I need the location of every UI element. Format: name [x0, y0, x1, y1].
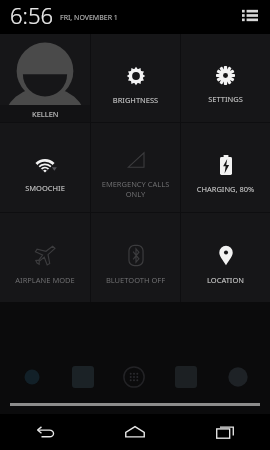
button[interactable]: BLUETOOTH OFF [91, 213, 180, 302]
staticText: LOCATION [183, 275, 268, 285]
button[interactable]: Recent apps [180, 414, 270, 450]
staticText: SETTINGS [183, 94, 268, 104]
button[interactable]: Back [0, 414, 90, 450]
button[interactable]: SMOOCHIE [0, 123, 90, 212]
button[interactable]: CHARGING, 80% [181, 123, 270, 212]
staticText: AIRPLANE MODE [2, 275, 88, 285]
button[interactable]: User Kellen [0, 34, 90, 122]
button[interactable]: AIRPLANE MODE [0, 213, 90, 302]
button[interactable]: Home [90, 414, 180, 450]
button[interactable]: Quick settings list [238, 3, 262, 27]
staticText: 6:56 [10, 0, 54, 30]
staticText: KELLEN [32, 109, 59, 119]
staticText: BLUETOOTH OFF [93, 275, 178, 285]
staticText: SMOOCHIE [2, 183, 88, 193]
button[interactable]: BRIGHTNESS [91, 34, 180, 122]
staticText: BRIGHTNESS [93, 95, 178, 105]
staticText: EMERGENCY CALLS ONLY [93, 179, 178, 199]
staticText: CHARGING, 80% [183, 184, 268, 194]
staticText: FRI, NOVEMBER 1 [60, 13, 118, 23]
button[interactable]: LOCATION [181, 213, 270, 302]
button[interactable]: EMERGENCY CALLS ONLY [91, 123, 180, 212]
button[interactable]: SETTINGS [181, 34, 270, 122]
